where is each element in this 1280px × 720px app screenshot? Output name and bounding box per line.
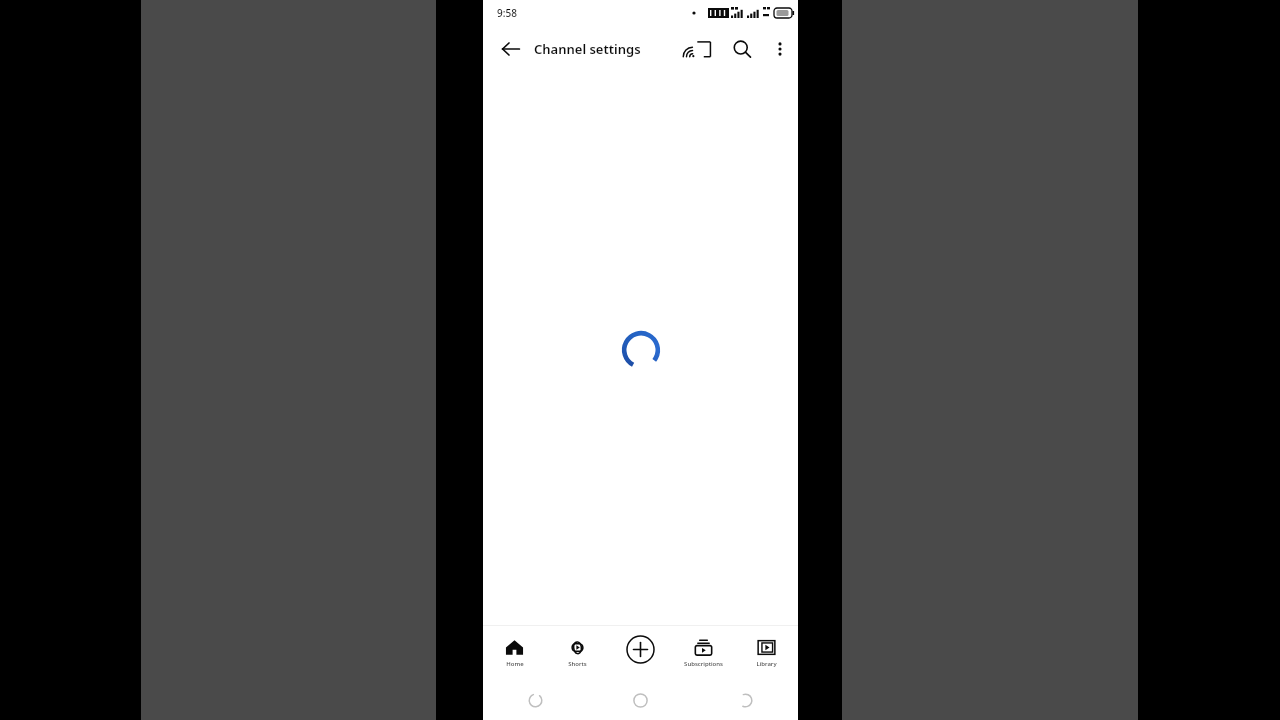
staticText: 9:58 [497, 6, 517, 20]
button[interactable]: Home [588, 680, 693, 720]
staticText: Subscriptions [684, 660, 723, 668]
button[interactable]: Subscriptions [672, 626, 735, 680]
button[interactable]: Create [609, 626, 672, 680]
button[interactable]: Back [493, 31, 529, 67]
staticText: Library [756, 660, 777, 668]
button[interactable]: Back [483, 680, 588, 720]
button[interactable]: Shorts [546, 626, 609, 680]
staticText: Shorts [568, 660, 587, 668]
button[interactable]: Cast [683, 31, 719, 67]
button[interactable]: Home [483, 626, 546, 680]
button[interactable]: Search [724, 31, 760, 67]
button[interactable]: Library [735, 626, 798, 680]
staticText: Channel settings [534, 40, 641, 58]
staticText: Home [506, 660, 524, 668]
button[interactable]: More options [762, 31, 798, 67]
button[interactable]: Recent apps [693, 680, 798, 720]
